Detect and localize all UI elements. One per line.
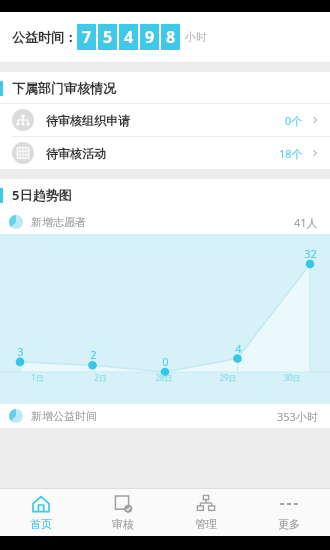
staticText: 2日 (94, 372, 107, 383)
staticText: 28日 (155, 372, 173, 383)
staticText: 9 (145, 26, 155, 48)
button[interactable]: 审核 (82, 489, 164, 536)
button[interactable]: 更多 (247, 489, 330, 536)
staticText: 小时 (185, 30, 207, 44)
staticText: 2 (90, 347, 97, 362)
staticText: 5 (103, 26, 113, 48)
staticText: 29日 (219, 372, 237, 383)
button[interactable]: 待审核活动 (0, 137, 330, 169)
button[interactable]: 管理 (164, 489, 247, 536)
staticText: 7 (82, 26, 92, 48)
staticText: 首页 (30, 517, 52, 531)
staticText: 3 (17, 344, 24, 359)
staticText: 4 (124, 26, 134, 48)
staticText: 353小时 (277, 409, 318, 424)
staticText: 待审核组织申请 (46, 113, 130, 128)
staticText: 5日趋势图 (12, 186, 72, 204)
staticText: 新增志愿者 (31, 215, 86, 229)
staticText: 审核 (112, 517, 134, 531)
staticText: 18个 (279, 146, 303, 161)
staticText: 0 (162, 354, 169, 369)
staticText: 1日 (31, 372, 44, 383)
staticText: 更多 (278, 517, 300, 531)
button[interactable]: 首页 (0, 489, 82, 536)
staticText: 待审核活动 (46, 146, 106, 161)
staticText: 41人 (294, 215, 318, 230)
staticText: 公益时间： (12, 29, 77, 45)
button[interactable]: 待审核组织申请 (0, 104, 330, 136)
staticText: 管理 (195, 517, 217, 531)
staticText: 32 (304, 246, 317, 261)
staticText: 30日 (283, 372, 301, 383)
staticText: 新增公益时间 (31, 409, 97, 423)
staticText: 0个 (285, 113, 303, 128)
staticText: 下属部门审核情况 (12, 80, 116, 96)
staticText: 8 (166, 26, 176, 48)
staticText: 4 (235, 341, 242, 356)
